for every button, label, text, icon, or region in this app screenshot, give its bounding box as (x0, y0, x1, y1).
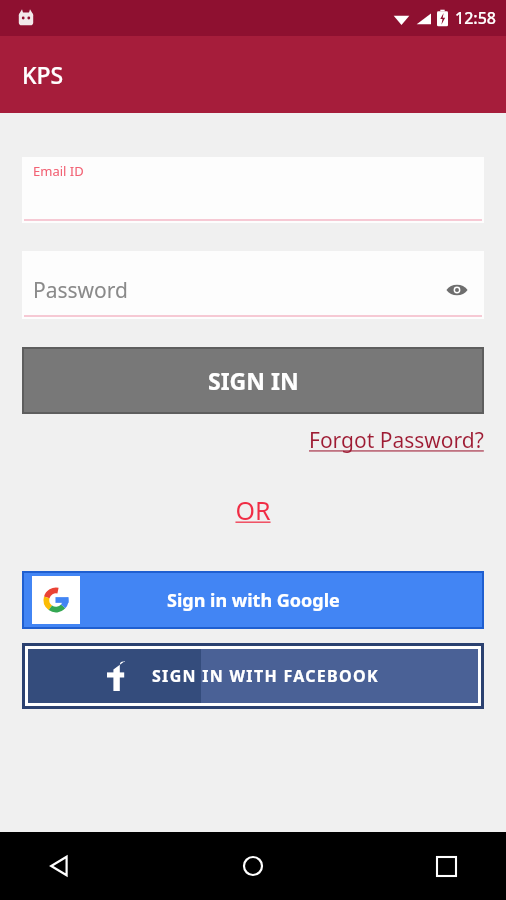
staticText: SIGN IN WITH FACEBOOK (152, 665, 379, 687)
button[interactable]: Password (22, 251, 484, 319)
button[interactable]: Home (229, 842, 277, 890)
staticText: Sign in with Google (167, 588, 340, 613)
button[interactable]: SIGN IN WITH FACEBOOK (28, 649, 478, 703)
button[interactable]: Back (36, 842, 84, 890)
button[interactable]: SIGN IN (24, 349, 482, 412)
staticText: OR (235, 493, 271, 527)
staticText: SIGN IN (208, 365, 299, 396)
button[interactable]: Show password (444, 277, 470, 303)
button[interactable]: Email ID (22, 157, 484, 223)
button[interactable]: Recent apps (422, 842, 470, 890)
staticText: Password (33, 276, 128, 305)
staticText: Email ID (33, 162, 84, 180)
button[interactable]: OR (235, 493, 271, 527)
staticText: 12:58 (455, 7, 496, 29)
staticText: Forgot Password? (309, 426, 484, 455)
button[interactable]: Sign in with Google (24, 573, 482, 627)
button[interactable]: Forgot Password? (309, 426, 484, 455)
staticText: KPS (22, 59, 64, 90)
